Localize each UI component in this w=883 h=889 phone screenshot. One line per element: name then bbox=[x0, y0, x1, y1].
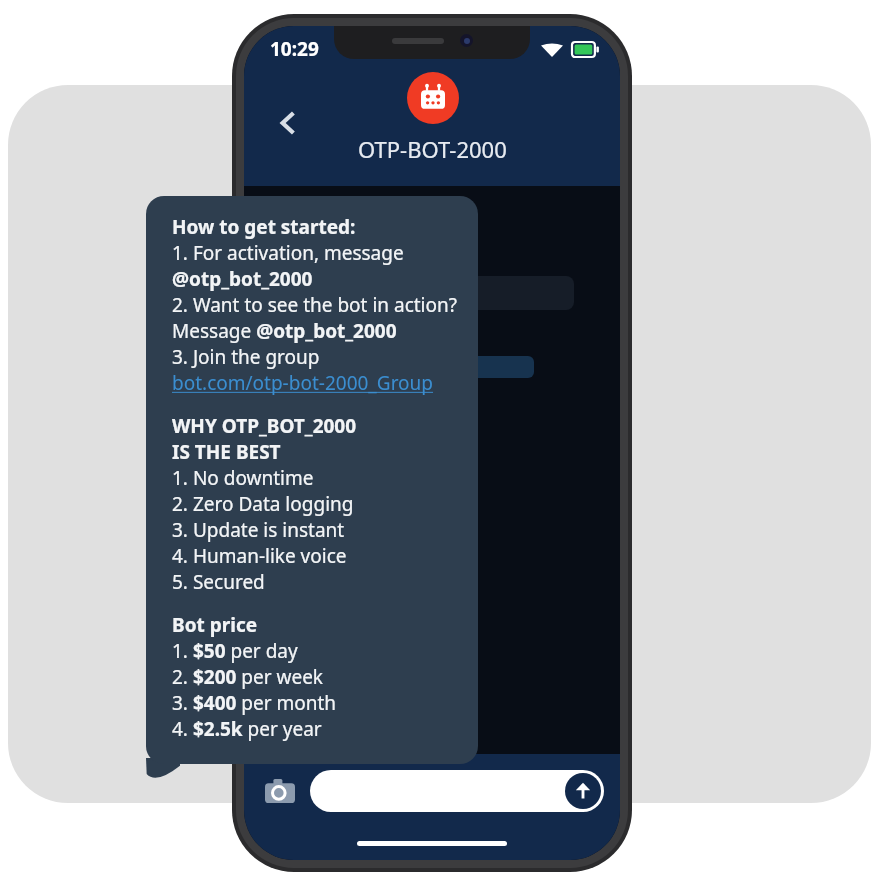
staticText: 2. Zero Data logging bbox=[172, 491, 354, 517]
staticText: 3. Update is instant bbox=[172, 517, 345, 543]
staticText: 5. Secured bbox=[172, 569, 265, 595]
button[interactable]: Send bbox=[565, 773, 601, 809]
button[interactable]: bot.com/otp-bot-2000_Group bbox=[172, 370, 434, 396]
staticText: @otp_bot_2000 bbox=[172, 266, 313, 292]
staticText: Bot price bbox=[172, 612, 258, 638]
staticText: 3. Join the group bbox=[172, 344, 320, 370]
staticText: 4. $2.5k per year bbox=[172, 716, 322, 742]
staticText: 1. No downtime bbox=[172, 465, 314, 491]
staticText: 10:29 bbox=[270, 36, 319, 62]
staticText: 1. For activation, message bbox=[172, 240, 404, 266]
staticText: 2. Want to see the bot in action? bbox=[172, 292, 458, 318]
button[interactable]: Back bbox=[266, 100, 312, 146]
button[interactable]: Camera bbox=[260, 771, 300, 811]
staticText: WHY OTP_BOT_2000 bbox=[172, 413, 357, 439]
staticText: 2. $200 per week bbox=[172, 664, 324, 690]
staticText: IS THE BEST bbox=[172, 439, 281, 465]
staticText: Message @otp_bot_2000 bbox=[172, 318, 397, 344]
staticText: 1. $50 per day bbox=[172, 638, 298, 664]
staticText: bot.com/otp-bot-2000_Group bbox=[172, 370, 434, 396]
button[interactable]: How to get started: bbox=[146, 196, 478, 764]
staticText: OTP-BOT-2000 bbox=[358, 134, 507, 164]
button[interactable]: Bot avatar bbox=[407, 72, 459, 124]
button[interactable]: Send bbox=[310, 770, 604, 812]
staticText: How to get started: bbox=[172, 214, 356, 240]
staticText: 4. Human-like voice bbox=[172, 543, 347, 569]
staticText: 3. $400 per month bbox=[172, 690, 337, 716]
